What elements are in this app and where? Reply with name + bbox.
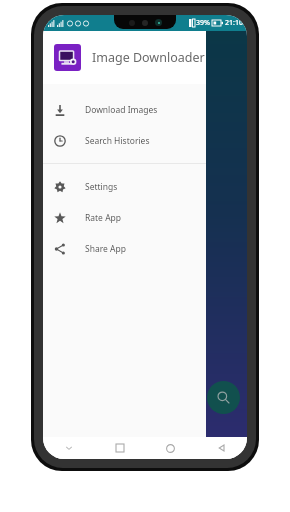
button[interactable]: Settings bbox=[43, 171, 206, 202]
button[interactable]: Share App bbox=[43, 233, 206, 264]
button[interactable]: Search Histories bbox=[43, 125, 206, 156]
staticText: Settings bbox=[85, 181, 118, 193]
button[interactable]: Back bbox=[196, 437, 247, 459]
button[interactable]: Search bbox=[207, 381, 240, 414]
button[interactable]: Recents bbox=[94, 437, 145, 459]
button[interactable]: Image Downloader bbox=[43, 31, 206, 84]
staticText: 39% bbox=[196, 18, 210, 28]
button[interactable]: Rate App bbox=[43, 202, 206, 233]
button[interactable]: Download Images bbox=[43, 94, 206, 125]
staticText: Download Images bbox=[85, 104, 158, 116]
button[interactable]: Home bbox=[145, 437, 196, 459]
staticText: Rate App bbox=[85, 212, 122, 224]
staticText: Search Histories bbox=[85, 135, 150, 147]
staticText: 21:10 bbox=[225, 18, 243, 28]
staticText: Share App bbox=[85, 243, 126, 255]
staticText: Image Downloader bbox=[92, 49, 205, 66]
button[interactable]: Hide keyboard bbox=[43, 437, 94, 459]
